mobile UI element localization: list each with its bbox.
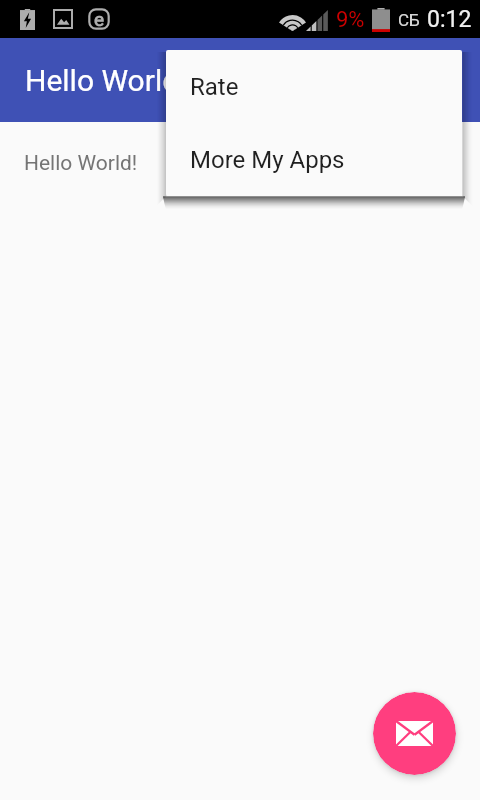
staticText: Hello World	[25, 63, 180, 98]
button[interactable]: Compose email	[373, 692, 456, 775]
staticText: 9%	[336, 7, 365, 33]
staticText: Hello World!	[24, 151, 138, 176]
staticText: СБ	[398, 10, 420, 30]
button[interactable]: More My Apps	[166, 123, 462, 196]
staticText: e	[94, 8, 105, 30]
button[interactable]: Rate	[166, 50, 462, 123]
staticText: 0:12	[427, 6, 472, 33]
staticText: More My Apps	[190, 146, 345, 174]
staticText: Rate	[190, 73, 239, 101]
